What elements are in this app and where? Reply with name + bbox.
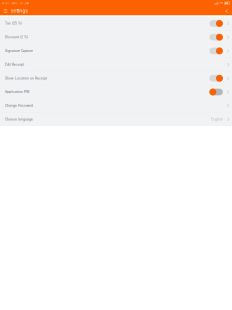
button[interactable]: More options: [223, 6, 230, 16]
button[interactable]: Change Password: [0, 99, 232, 112]
staticText: English: [211, 118, 223, 121]
staticText: 10:41: [2, 2, 9, 5]
button[interactable]: Menu: [2, 6, 9, 16]
staticText: Settings: [11, 8, 28, 14]
button[interactable]: Tax (25 %): [0, 17, 232, 30]
staticText: Signature Capture: [5, 49, 33, 53]
staticText: Discount (2 %): [5, 35, 28, 39]
button[interactable]: Show Location on Receipt: [0, 72, 232, 85]
button[interactable]: Discount (2 %): [0, 30, 232, 44]
button[interactable]: Choose language: [0, 113, 232, 126]
staticText: Mon, 20 Jan: [11, 2, 29, 5]
button[interactable]: Signature Capture: [0, 44, 232, 58]
staticText: Tax (25 %): [5, 22, 22, 25]
staticText: Application PIN: [5, 90, 29, 94]
staticText: Change Password: [5, 104, 33, 107]
staticText: Edit Receipt: [5, 63, 24, 66]
staticText: Choose language: [5, 117, 33, 121]
staticText: Show Location on Receipt: [5, 76, 47, 80]
button[interactable]: Edit Receipt: [0, 58, 232, 71]
button[interactable]: Application PIN: [0, 85, 232, 99]
